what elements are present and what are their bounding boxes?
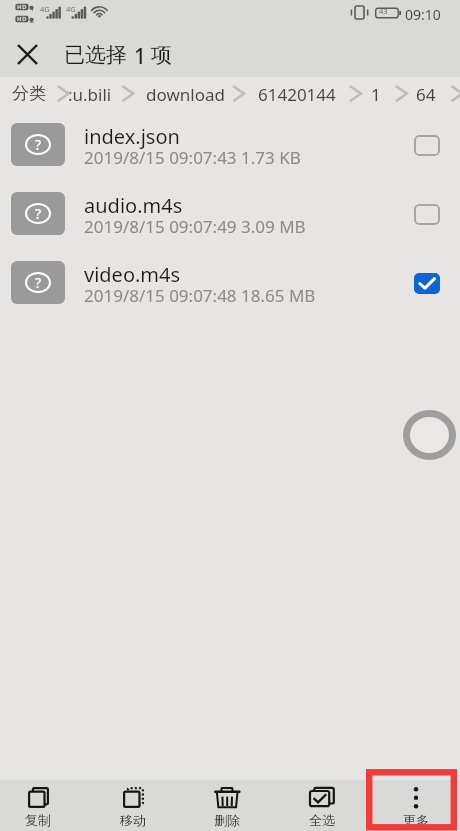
staticText: 2 — [30, 15, 35, 25]
staticText: ? — [35, 273, 42, 292]
button[interactable]: ? — [0, 110, 460, 179]
staticText: ? — [35, 135, 42, 154]
button[interactable]: download — [146, 83, 225, 106]
button[interactable]: Select file — [404, 191, 450, 237]
staticText: 09:10 — [405, 5, 441, 24]
staticText: audio.m4s — [84, 192, 183, 219]
staticText: 项 — [151, 42, 172, 68]
button[interactable]: 更多 — [371, 780, 460, 831]
staticText: 2019/8/15 09:07:48 18.65 MB — [84, 284, 316, 307]
button[interactable]: 分类 — [12, 83, 46, 104]
button[interactable]: 复制 — [0, 780, 83, 831]
staticText: index.json — [84, 123, 180, 150]
button[interactable]: 全选 — [277, 780, 367, 831]
staticText: 全选 — [309, 812, 335, 828]
staticText: 删除 — [214, 812, 240, 828]
button[interactable]: 移动 — [88, 780, 178, 831]
staticText: 2019/8/15 09:07:49 3.09 MB — [84, 215, 306, 238]
staticText: 移动 — [120, 812, 146, 828]
staticText: 复制 — [25, 812, 51, 828]
staticText: 4G — [40, 4, 50, 14]
staticText: 已选择 — [64, 42, 127, 68]
button[interactable]: Select file — [404, 260, 450, 306]
button[interactable]: Assistive touch — [403, 410, 456, 460]
staticText: 1 — [30, 3, 35, 13]
button[interactable]: Select file — [404, 122, 450, 168]
button[interactable]: :u.bili — [68, 83, 112, 106]
staticText: ? — [35, 204, 42, 223]
button[interactable]: 1 — [371, 83, 381, 106]
button[interactable]: ? — [0, 179, 460, 248]
staticText: 43 — [379, 6, 388, 16]
staticText: 4G — [66, 4, 76, 14]
staticText: 1 — [134, 42, 147, 71]
staticText: 2019/8/15 09:07:43 1.73 KB — [84, 146, 301, 169]
button[interactable]: 61420144 — [258, 83, 336, 106]
button[interactable]: Close selection — [9, 36, 45, 72]
button[interactable]: ? — [0, 248, 460, 317]
staticText: 更多 — [403, 812, 429, 828]
button[interactable]: 删除 — [182, 780, 272, 831]
button[interactable]: 64 — [416, 83, 436, 106]
staticText: video.m4s — [84, 261, 181, 288]
